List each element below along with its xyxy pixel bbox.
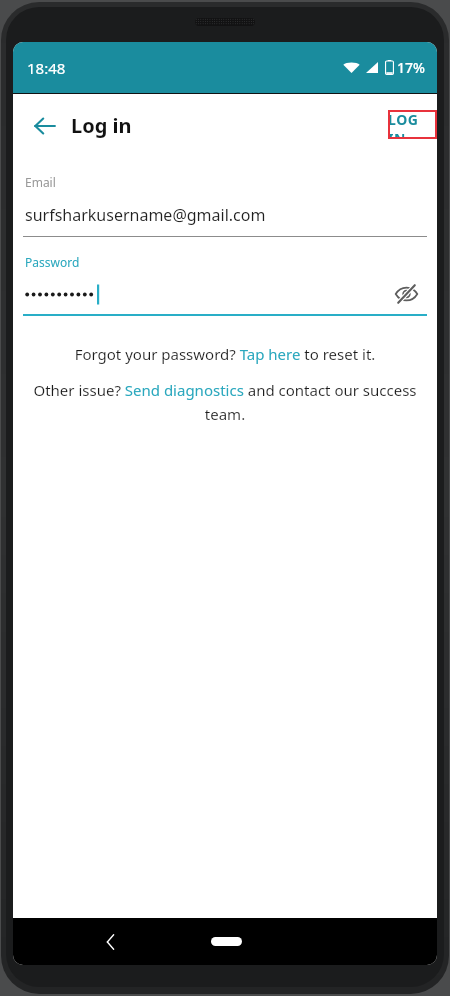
button[interactable]: Forgot your password? Tap here to reset … <box>23 344 427 364</box>
button[interactable]: LOG IN <box>388 110 437 139</box>
button[interactable]: Home <box>211 937 242 946</box>
staticText: Password <box>25 254 80 270</box>
button[interactable]: Back <box>23 104 67 148</box>
staticText: Email <box>25 174 56 190</box>
staticText: surfsharkusername@gmail.com <box>25 204 266 226</box>
button[interactable]: Other issue? Send diagnostics and contac… <box>23 380 427 424</box>
button[interactable]: Show password <box>388 280 424 308</box>
staticText: Log in <box>71 112 132 139</box>
staticText: LOG IN <box>388 110 437 139</box>
staticText: 17% <box>397 58 425 77</box>
staticText: 18:48 <box>27 58 66 78</box>
button[interactable]: Back <box>91 923 129 961</box>
button[interactable]: Show password <box>23 280 427 308</box>
button[interactable]: surfsharkusername@gmail.com <box>23 202 427 228</box>
